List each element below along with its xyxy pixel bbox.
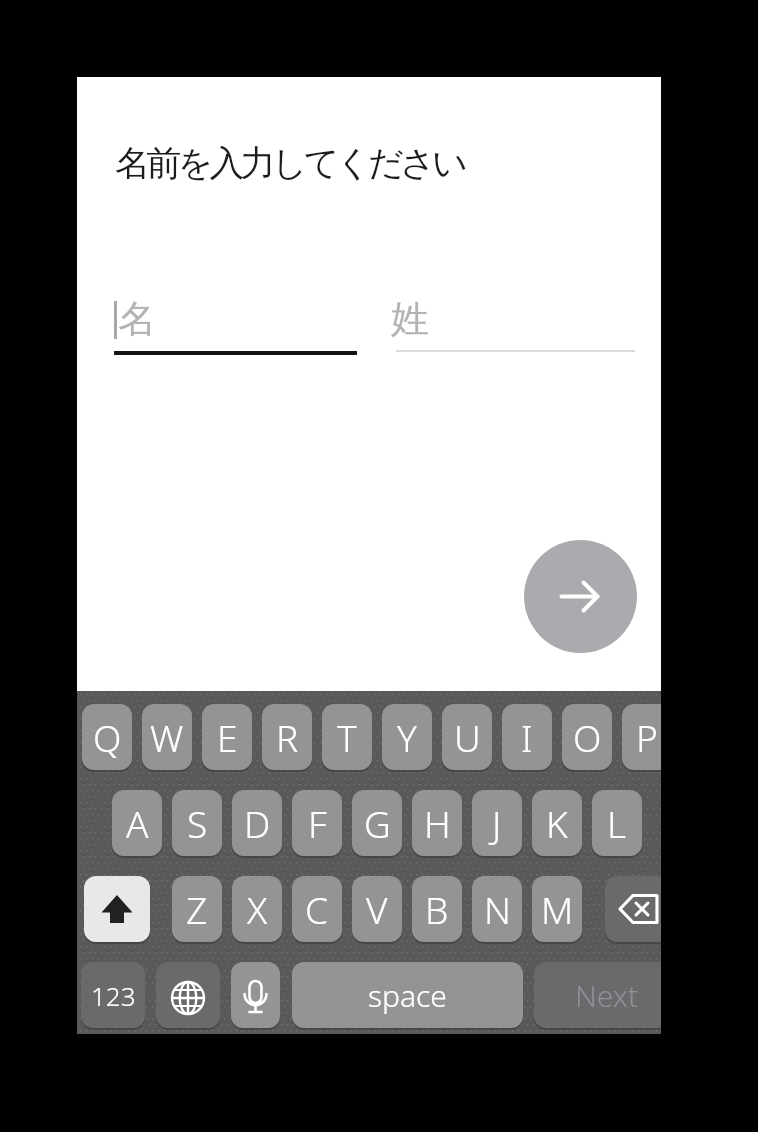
button[interactable]: Y — [382, 704, 432, 770]
button[interactable]: T — [322, 704, 372, 770]
staticText: K — [546, 798, 568, 848]
staticText: Next — [575, 975, 639, 1016]
button[interactable]: R — [262, 704, 312, 770]
button[interactable]: W — [142, 704, 192, 770]
staticText: F — [308, 798, 327, 848]
staticText: B — [425, 884, 449, 934]
button[interactable]: N — [472, 876, 522, 942]
button[interactable]: S — [172, 790, 222, 856]
staticText: J — [492, 798, 502, 848]
button[interactable]: H — [412, 790, 462, 856]
button[interactable]: I — [502, 704, 552, 770]
staticText: space — [368, 975, 447, 1016]
staticText: 123 — [91, 978, 136, 1013]
button[interactable]: 123 — [81, 962, 145, 1028]
button[interactable]: F — [292, 790, 342, 856]
staticText: 姓 — [391, 295, 429, 343]
button[interactable]: U — [442, 704, 492, 770]
button[interactable]: V — [352, 876, 402, 942]
button[interactable]: P — [622, 704, 661, 770]
button[interactable]: Next — [534, 962, 661, 1028]
staticText: O — [573, 712, 602, 762]
button[interactable]: K — [532, 790, 582, 856]
button[interactable]: L — [592, 790, 642, 856]
button[interactable]: C — [292, 876, 342, 942]
staticText: U — [454, 712, 481, 762]
staticText: T — [337, 712, 357, 762]
staticText: W — [150, 712, 184, 762]
staticText: Y — [397, 712, 417, 762]
button[interactable]: J — [472, 790, 522, 856]
button[interactable]: Z — [172, 876, 222, 942]
staticText: X — [247, 884, 268, 934]
staticText: 名 — [118, 295, 156, 343]
button[interactable]: B — [412, 876, 462, 942]
button[interactable]: Q — [82, 704, 132, 770]
staticText: 名前を入力してください — [115, 141, 464, 185]
staticText: L — [607, 798, 627, 848]
button[interactable] — [605, 876, 661, 942]
staticText: N — [484, 884, 511, 934]
staticText: Q — [93, 712, 122, 762]
staticText: R — [276, 712, 299, 762]
button[interactable]: space — [292, 962, 523, 1028]
staticText: A — [126, 798, 149, 848]
staticText: H — [424, 798, 451, 848]
staticText: I — [521, 712, 533, 762]
staticText: G — [364, 798, 391, 848]
button[interactable] — [156, 962, 220, 1028]
staticText: C — [305, 884, 329, 934]
staticText: P — [636, 712, 658, 762]
button[interactable]: D — [232, 790, 282, 856]
button[interactable]: G — [352, 790, 402, 856]
button[interactable]: E — [202, 704, 252, 770]
button[interactable]: M — [532, 876, 582, 942]
staticText: M — [541, 884, 574, 934]
staticText: V — [366, 884, 388, 934]
button[interactable] — [524, 540, 637, 653]
staticText: S — [187, 798, 208, 848]
staticText: Z — [186, 884, 208, 934]
button[interactable] — [84, 876, 150, 942]
button[interactable]: X — [232, 876, 282, 942]
button[interactable]: A — [112, 790, 162, 856]
staticText: E — [217, 712, 238, 762]
button[interactable] — [231, 962, 280, 1028]
staticText: D — [244, 798, 271, 848]
button[interactable]: O — [562, 704, 612, 770]
